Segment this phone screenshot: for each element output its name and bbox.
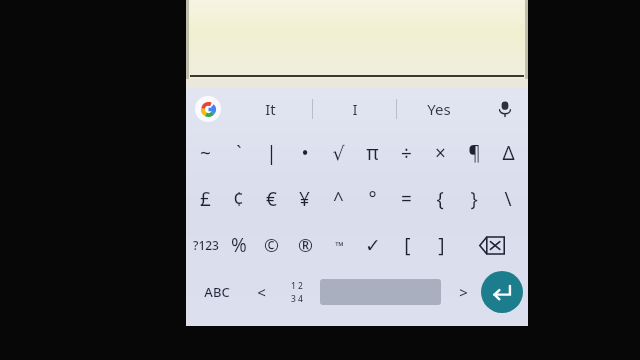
button[interactable]: ÷: [389, 130, 423, 176]
button[interactable]: ×: [423, 130, 457, 176]
button[interactable]: ™: [322, 222, 356, 268]
staticText: √: [332, 142, 345, 164]
button[interactable]: Δ: [491, 130, 525, 176]
staticText: ¶: [468, 140, 481, 166]
staticText: `: [236, 140, 242, 166]
staticText: ™: [335, 238, 344, 253]
button[interactable]: Voice input: [488, 92, 522, 126]
button[interactable]: \: [491, 176, 525, 222]
staticText: ×: [435, 140, 446, 166]
staticText: ÷: [401, 140, 412, 166]
staticText: %: [231, 232, 247, 258]
button[interactable]: =: [389, 176, 423, 222]
button[interactable]: {: [423, 176, 457, 222]
staticText: °: [368, 186, 377, 212]
staticText: ✓: [365, 234, 381, 256]
button[interactable]: £: [189, 176, 222, 222]
staticText: |: [266, 140, 277, 166]
button[interactable]: Enter: [481, 271, 523, 313]
staticText: 4: [298, 293, 303, 305]
button[interactable]: €: [255, 176, 288, 222]
button[interactable]: [: [390, 222, 424, 268]
staticText: I: [352, 99, 358, 119]
button[interactable]: ABC: [189, 268, 245, 316]
staticText: €: [266, 186, 277, 212]
button[interactable]: ©: [255, 222, 288, 268]
staticText: {: [436, 186, 444, 212]
staticText: It: [265, 99, 276, 119]
staticText: £: [200, 186, 211, 212]
staticText: >: [459, 282, 468, 302]
staticText: ~: [200, 140, 211, 166]
button[interactable]: %: [222, 222, 255, 268]
button[interactable]: }: [457, 176, 491, 222]
button[interactable]: ^: [321, 176, 355, 222]
staticText: •: [301, 140, 309, 166]
button[interactable]: ]: [424, 222, 458, 268]
button[interactable]: Google: [195, 96, 221, 122]
button[interactable]: •: [288, 130, 321, 176]
button[interactable]: ¥: [288, 176, 321, 222]
staticText: ]: [438, 232, 445, 258]
button[interactable]: √: [321, 130, 355, 176]
button[interactable]: °: [355, 176, 389, 222]
staticText: =: [401, 186, 412, 212]
staticText: ABC: [204, 283, 230, 301]
button[interactable]: Move cursor left: [245, 268, 278, 316]
button[interactable]: ✓: [356, 222, 390, 268]
button[interactable]: ~: [189, 130, 222, 176]
staticText: 3: [291, 293, 296, 305]
button[interactable]: Move cursor right: [445, 268, 481, 316]
button[interactable]: I: [313, 88, 396, 130]
button[interactable]: ?123: [189, 222, 222, 268]
button[interactable]: Yes: [397, 88, 480, 130]
staticText: ©: [264, 233, 279, 258]
staticText: 1: [291, 280, 296, 292]
staticText: ¢: [233, 186, 244, 212]
button[interactable]: `: [222, 130, 255, 176]
staticText: 2: [298, 280, 303, 292]
staticText: }: [470, 186, 478, 212]
button[interactable]: Backspace: [458, 222, 525, 268]
staticText: Δ: [502, 140, 515, 166]
staticText: Yes: [427, 99, 451, 119]
button[interactable]: ¶: [457, 130, 491, 176]
staticText: [: [404, 232, 411, 258]
staticText: ¥: [299, 186, 310, 212]
staticText: <: [257, 282, 266, 302]
staticText: ^: [333, 186, 344, 212]
button[interactable]: |: [255, 130, 288, 176]
button[interactable]: It: [228, 88, 312, 130]
button[interactable]: Numbers: [278, 268, 316, 316]
staticText: π: [366, 140, 379, 166]
staticText: ?123: [193, 237, 219, 253]
staticText: ®: [298, 233, 313, 258]
button[interactable]: ®: [288, 222, 322, 268]
button[interactable]: π: [355, 130, 389, 176]
button[interactable]: ¢: [222, 176, 255, 222]
staticText: \: [504, 186, 512, 212]
